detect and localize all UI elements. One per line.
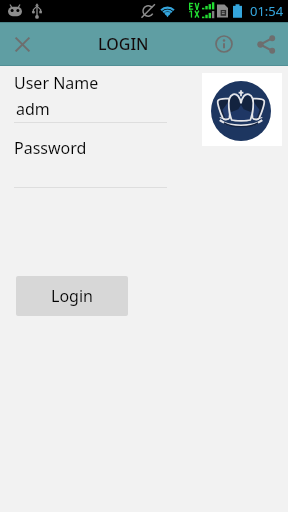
staticText: 01:54 (250, 2, 284, 20)
button[interactable]: Close (4, 26, 40, 62)
staticText: Login (51, 285, 93, 307)
button[interactable]: Login (16, 276, 128, 316)
staticText: LOGIN (98, 33, 149, 55)
staticText: Password (14, 137, 87, 159)
button[interactable]: Share (248, 26, 284, 62)
staticText: User Name (14, 72, 99, 94)
staticText: adm (16, 98, 50, 120)
button[interactable]: Info (206, 26, 242, 62)
